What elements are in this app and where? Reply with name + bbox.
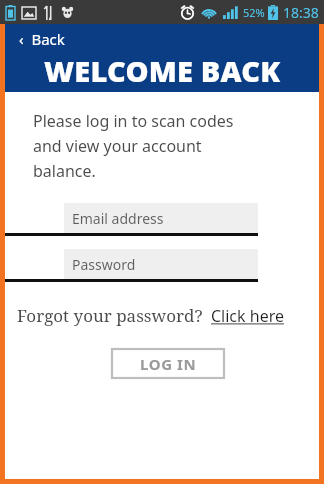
staticText: 52%: [243, 5, 265, 20]
staticText: LOG IN: [140, 354, 197, 374]
button[interactable]: LOG IN: [112, 349, 224, 378]
button[interactable]: Click here: [211, 305, 284, 327]
staticText: Password: [72, 255, 136, 274]
button[interactable]: Email address: [5, 203, 319, 236]
staticText: Click here: [211, 305, 284, 327]
staticText: ‹ Back: [19, 29, 65, 49]
staticText: WELCOME BACK: [44, 51, 281, 90]
staticText: Please log in to scan codes and view you…: [33, 110, 234, 181]
button[interactable]: Password: [5, 249, 319, 282]
staticText: Email address: [72, 209, 164, 228]
staticText: 18:38: [283, 3, 319, 22]
button[interactable]: ‹ Back: [15, 27, 69, 51]
staticText: Forgot your password?: [17, 304, 203, 327]
